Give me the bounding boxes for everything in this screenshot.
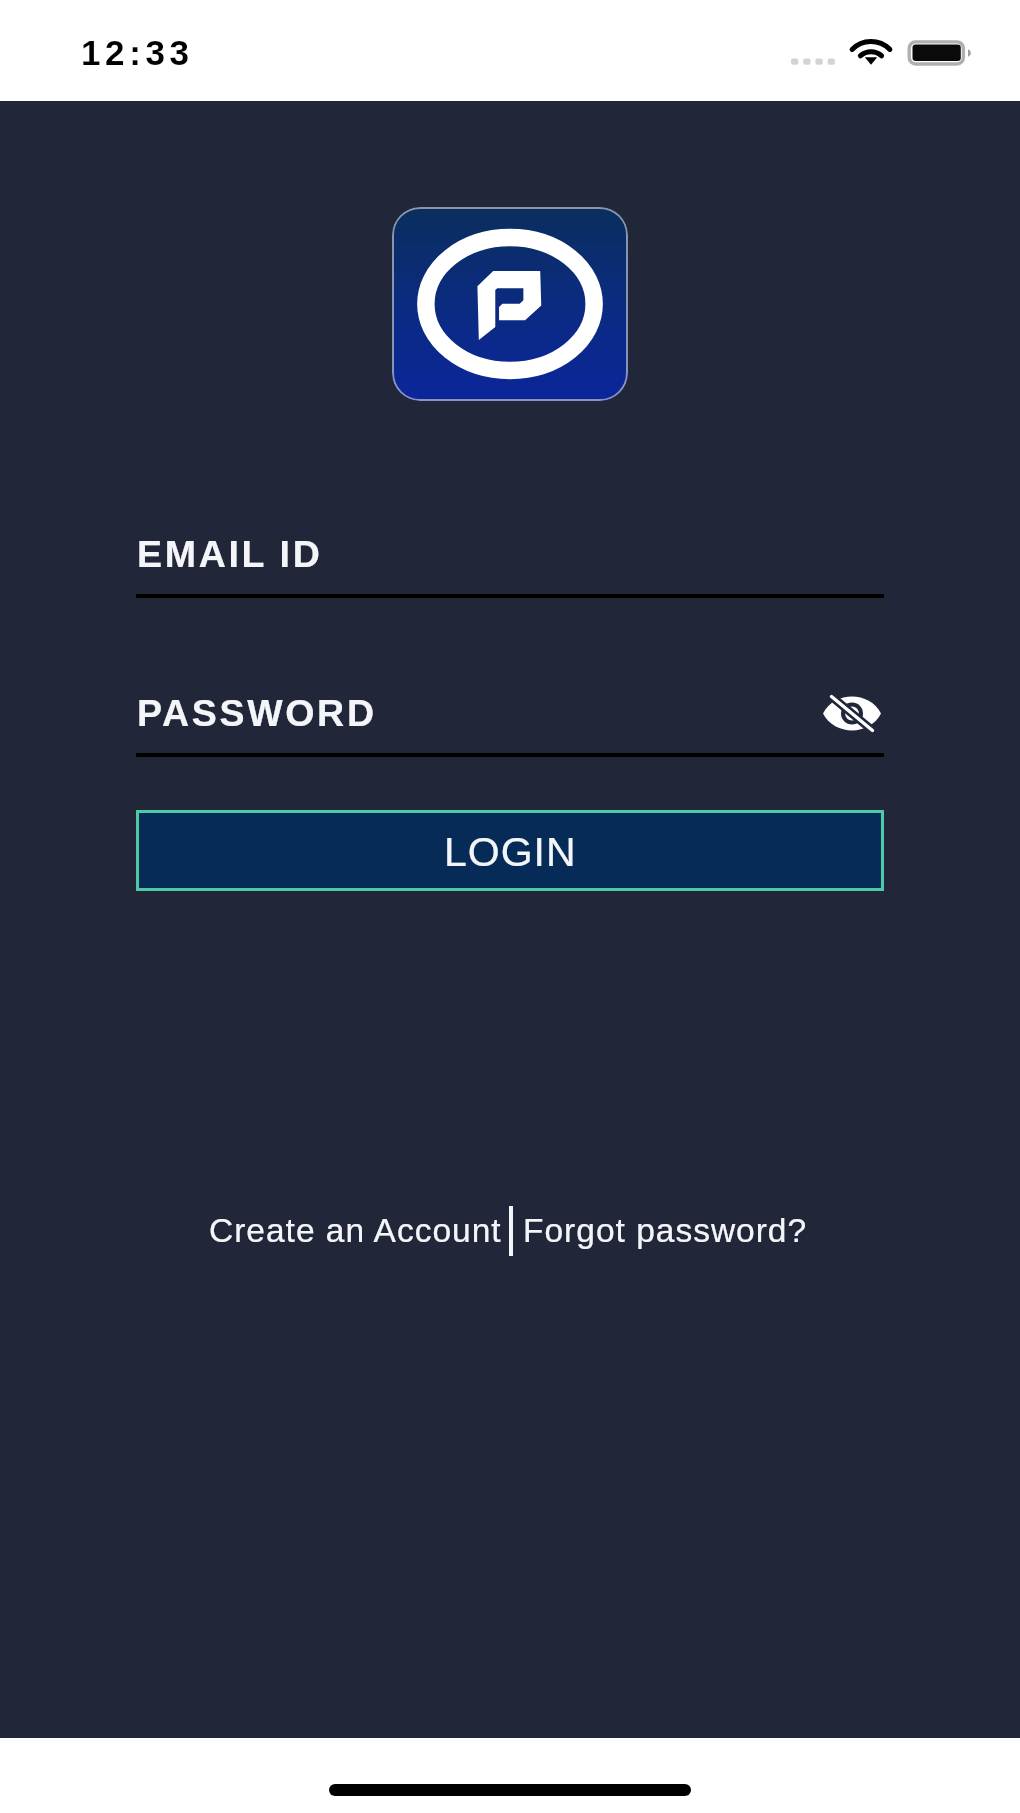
staticText: 12:33: [81, 33, 194, 72]
button[interactable]: Forgot password?: [523, 1212, 808, 1249]
button[interactable]: LOGIN: [136, 810, 884, 891]
staticText: PASSWORD: [137, 692, 377, 734]
button[interactable]: Create an Account: [209, 1212, 502, 1249]
button[interactable]: PASSWORD: [136, 692, 884, 757]
staticText: Forgot password?: [523, 1212, 808, 1249]
staticText: LOGIN: [444, 829, 577, 875]
staticText: EMAIL ID: [137, 533, 323, 575]
button[interactable]: EMAIL ID: [136, 533, 884, 598]
button[interactable]: Show password: [820, 693, 884, 734]
staticText: Create an Account: [209, 1212, 502, 1249]
